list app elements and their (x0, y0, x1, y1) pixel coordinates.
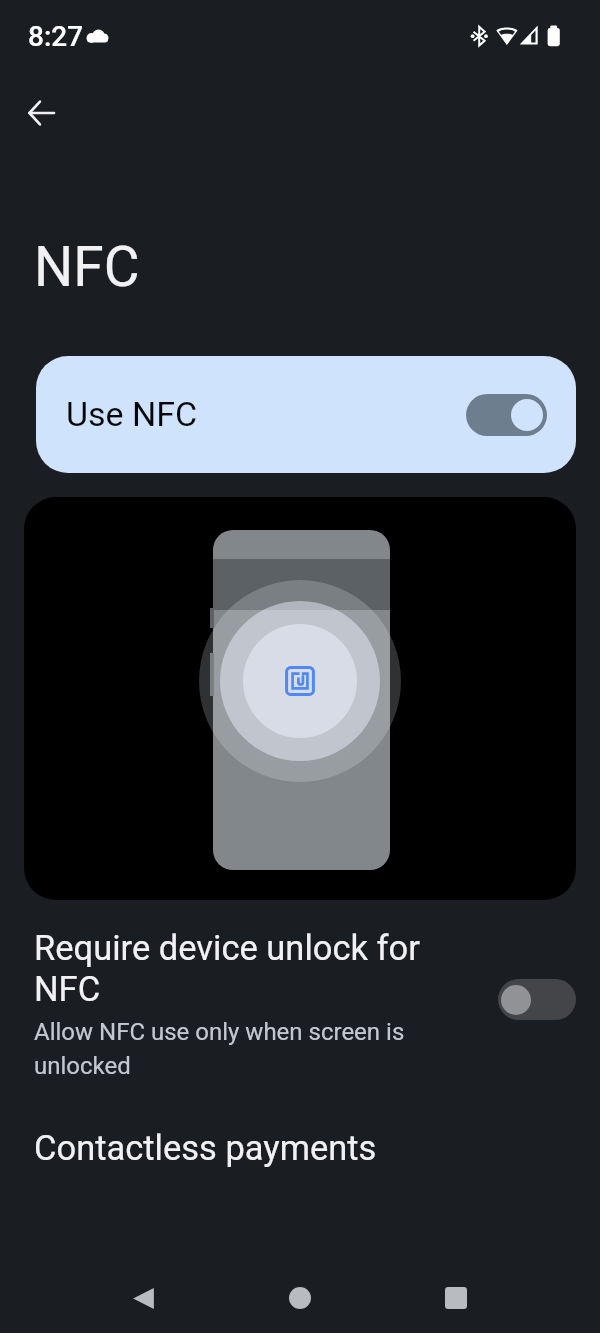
staticText: Require device unlock for NFC (34, 928, 462, 1010)
button[interactable]: Require device unlock for NFC (0, 906, 600, 1076)
staticText: Use NFC (66, 393, 198, 435)
button[interactable]: Navigate up (5, 77, 77, 149)
button[interactable]: Use NFC (36, 356, 576, 473)
staticText: 8:27 (28, 22, 84, 52)
button[interactable]: Recent apps (420, 1262, 492, 1333)
button[interactable]: Home (264, 1262, 336, 1333)
staticText: NFC (34, 237, 140, 299)
staticText: Allow NFC use only when screen is unlock… (34, 1013, 462, 1081)
button[interactable]: Back (107, 1262, 179, 1333)
staticText: Contactless payments (34, 1125, 377, 1169)
